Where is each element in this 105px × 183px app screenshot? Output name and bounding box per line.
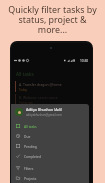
staticText: Quickly filter tasks by status, project …: [0, 3, 105, 35]
button[interactable]: Filters: [11, 163, 89, 173]
staticText: Pending: [24, 144, 37, 148]
staticText: All tasks: [16, 71, 34, 77]
button[interactable]: B. Webinar: secret sauce: [11, 94, 92, 105]
staticText: Projects: [24, 176, 37, 180]
staticText: Completed: [24, 154, 41, 158]
button[interactable]: Pending: [11, 141, 89, 151]
button[interactable]: A. Transfer dragon @home: [11, 81, 92, 92]
button[interactable]: Projects: [11, 173, 89, 183]
staticText: adityabhushan@gmail.com: [26, 113, 62, 117]
staticText: Today: [19, 88, 28, 92]
button[interactable]: All tasks: [11, 121, 89, 131]
button[interactable]: Completed: [11, 151, 89, 161]
staticText: Due: [24, 134, 31, 138]
staticText: Filters: [24, 166, 34, 170]
staticText: 10:30: [80, 59, 89, 63]
staticText: B. Webinar: secret sauce: [19, 95, 58, 100]
button[interactable]: Aditya Bhushan (Adi): [11, 106, 89, 118]
staticText: Tomorrow: [19, 101, 33, 105]
staticText: All tasks: [24, 124, 37, 128]
staticText: Aditya Bhushan (Adi): [26, 107, 62, 112]
button[interactable]: Due: [11, 131, 89, 141]
staticText: A. Transfer dragon @home: [19, 82, 62, 87]
